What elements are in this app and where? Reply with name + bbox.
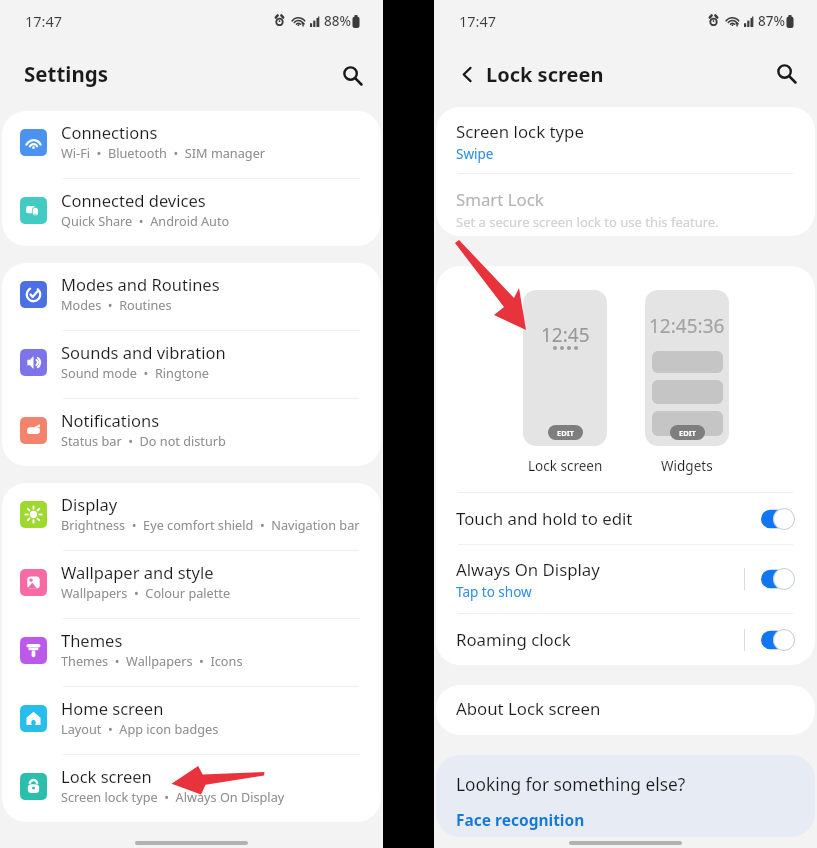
button[interactable]: Smart Lock xyxy=(436,174,815,236)
button[interactable]: Notifications xyxy=(2,399,381,466)
staticText: Set a secure screen lock to use this fea… xyxy=(456,213,719,231)
button[interactable]: 12:45:36 xyxy=(645,290,729,446)
staticText: 88% xyxy=(324,12,351,30)
button[interactable]: EDIT xyxy=(670,425,705,440)
staticText: Connections xyxy=(61,121,158,143)
button[interactable]: Search xyxy=(768,55,806,93)
staticText: 12:45 xyxy=(541,322,590,348)
staticText: Home screen xyxy=(61,697,164,719)
staticText: Wallpaper and style xyxy=(61,561,214,583)
staticText: Roaming clock xyxy=(456,628,571,651)
button[interactable]: Search xyxy=(334,57,372,95)
staticText: Layout • App icon badges xyxy=(61,720,219,737)
staticText: Looking for something else? xyxy=(456,773,686,797)
staticText: Brightness • Eye comfort shield • Naviga… xyxy=(61,516,360,533)
staticText: Swipe xyxy=(456,145,494,163)
staticText: Settings xyxy=(24,60,109,88)
staticText: Lock screen xyxy=(486,61,604,88)
staticText: Notifications xyxy=(61,409,160,431)
button[interactable]: Home screen xyxy=(2,687,381,754)
staticText: Touch and hold to edit xyxy=(456,507,633,530)
button[interactable]: Lock screen xyxy=(2,755,381,822)
staticText: Wi-Fi • Bluetooth • SIM manager xyxy=(61,144,266,161)
staticText: Sounds and vibration xyxy=(61,341,226,363)
button[interactable]: Always On Display xyxy=(436,545,815,613)
staticText: Smart Lock xyxy=(456,188,544,211)
staticText: Wallpapers • Colour palette xyxy=(61,584,231,601)
staticText: EDIT xyxy=(679,428,696,438)
button[interactable]: Sounds and vibration xyxy=(2,331,381,398)
button[interactable]: Touch and hold to edit xyxy=(436,493,815,544)
button[interactable] xyxy=(761,508,795,530)
staticText: Themes xyxy=(61,629,123,651)
staticText: Status bar • Do not disturb xyxy=(61,432,226,449)
button[interactable]: Face recognition xyxy=(456,809,585,830)
staticText: Display xyxy=(61,493,118,515)
staticText: Themes • Wallpapers • Icons xyxy=(61,652,243,669)
button[interactable]: 12:45 xyxy=(523,290,607,446)
button[interactable]: Connections xyxy=(2,111,381,178)
button[interactable]: Wallpaper and style xyxy=(2,551,381,618)
button[interactable]: Connected devices xyxy=(2,179,381,246)
staticText: Connected devices xyxy=(61,189,206,211)
staticText: Sound mode • Ringtone xyxy=(61,364,209,381)
button[interactable]: Display xyxy=(2,483,381,550)
staticText: Lock screen xyxy=(61,765,152,787)
staticText: Quick Share • Android Auto xyxy=(61,212,230,229)
staticText: 17:47 xyxy=(25,11,63,31)
staticText: 12:45:36 xyxy=(649,313,725,339)
staticText: EDIT xyxy=(557,428,574,438)
button[interactable]: About Lock screen xyxy=(436,685,815,735)
staticText: Screen lock type xyxy=(456,120,584,143)
staticText: About Lock screen xyxy=(456,697,601,720)
button[interactable] xyxy=(761,568,795,590)
staticText: Tap to show xyxy=(456,583,532,601)
staticText: Modes and Routines xyxy=(61,273,220,295)
staticText: 87% xyxy=(758,12,785,30)
staticText: Lock screen xyxy=(528,457,603,475)
staticText: Screen lock type • Always On Display xyxy=(61,788,285,805)
button[interactable]: Roaming clock xyxy=(436,614,815,665)
staticText: Widgets xyxy=(661,457,713,475)
button[interactable]: Modes and Routines xyxy=(2,263,381,330)
staticText: Always On Display xyxy=(456,558,600,581)
staticText: 17:47 xyxy=(459,11,497,31)
button[interactable]: Themes xyxy=(2,619,381,686)
button[interactable] xyxy=(761,629,795,651)
staticText: Modes • Routines xyxy=(61,296,172,313)
button[interactable]: Screen lock type xyxy=(436,107,815,173)
button[interactable]: EDIT xyxy=(548,425,583,440)
button[interactable]: Back xyxy=(448,55,486,93)
